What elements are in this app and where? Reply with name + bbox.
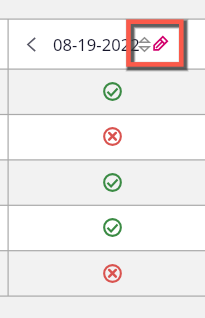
- other: Passed: [103, 173, 122, 192]
- button[interactable]: Edit: [152, 36, 168, 52]
- button[interactable]: Failed: [8, 251, 205, 296]
- other: Passed: [103, 218, 122, 237]
- staticText: 08-19-2022: [53, 33, 140, 56]
- other: Failed: [103, 127, 122, 146]
- button[interactable]: Failed: [8, 114, 205, 159]
- other: Passed: [103, 82, 122, 101]
- other: Failed: [103, 264, 122, 283]
- button[interactable]: Sort: [139, 37, 150, 52]
- button[interactable]: Passed: [8, 69, 205, 114]
- button[interactable]: Passed: [8, 205, 205, 250]
- button[interactable]: Passed: [8, 160, 205, 205]
- button[interactable]: Back: [25, 33, 38, 55]
